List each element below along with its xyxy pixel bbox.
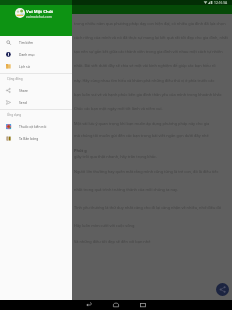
button[interactable]: Thuốc xịt kiến nói bbox=[0, 120, 72, 132]
button[interactable]: Share bbox=[0, 84, 72, 96]
staticText: trong nhiều năm qua phương pháp dạy con … bbox=[74, 21, 226, 26]
staticText: bạn luôn vui vẻ và hạnh phúc bên gia đìn… bbox=[74, 92, 222, 97]
staticText: Phút g bbox=[74, 148, 87, 153]
button[interactable]: Tìm kiếm bbox=[0, 36, 72, 48]
button[interactable]: Danh mục bbox=[0, 48, 72, 60]
staticText: Một vài lưu ý quan trọng khi bạn muốn áp… bbox=[74, 121, 210, 126]
button[interactable]: Send bbox=[0, 96, 72, 108]
staticText: Share bbox=[19, 88, 28, 92]
staticText: Tình yêu thương là thứ duy nhất càng cho… bbox=[74, 205, 222, 210]
staticText: mà chúng tôi muốn gửi đến các bạn trong … bbox=[74, 133, 209, 138]
staticText: Hãy luôn mỉm cười với cuộc sống bbox=[74, 223, 135, 228]
staticText: tạo nên sự gắn kết giữa các thành viên t… bbox=[74, 49, 223, 54]
staticText: Tìm kiếm bbox=[19, 40, 34, 44]
staticText: Ta Bắn bóng bbox=[19, 136, 39, 140]
staticText: 12:16 SA bbox=[214, 0, 228, 4]
staticText: Chúc các bạn một ngày mới tốt lành và ni… bbox=[74, 106, 163, 111]
staticText: Người lớn thường hay quên mất rằng mình … bbox=[74, 169, 219, 174]
button[interactable]: Share bbox=[216, 283, 229, 296]
staticText: giây trôi qua thật nhanh, hãy trân trọng… bbox=[74, 154, 157, 159]
staticText: Vui Một Chút bbox=[26, 9, 54, 15]
staticText: Thuốc xịt kiến nói bbox=[19, 124, 47, 128]
staticText: nhất. Bài viết dưới đây sẽ chia sẻ một v… bbox=[74, 63, 216, 68]
staticText: cách riêng của mình và nó đã thực sự man… bbox=[74, 35, 228, 40]
staticText: Send bbox=[19, 100, 27, 104]
staticText: vuimotchut.com bbox=[26, 14, 52, 19]
staticText: Lịch sử bbox=[19, 64, 30, 68]
staticText: Cộng đồng bbox=[7, 77, 23, 81]
staticText: Danh mục bbox=[19, 52, 35, 56]
staticText: nhất trong quá trình trưởng thành của mỗ… bbox=[74, 187, 178, 192]
button[interactable]: Ta Bắn bóng bbox=[0, 132, 72, 144]
button[interactable]: Lịch sử bbox=[0, 60, 72, 72]
staticText: này. Hãy cùng nhau tìm hiểu và khám phá … bbox=[74, 78, 215, 83]
staticText: Và những điều tốt đẹp sẽ đến với bạn nhé bbox=[74, 239, 151, 244]
staticText: Ứng dụng bbox=[7, 113, 22, 117]
